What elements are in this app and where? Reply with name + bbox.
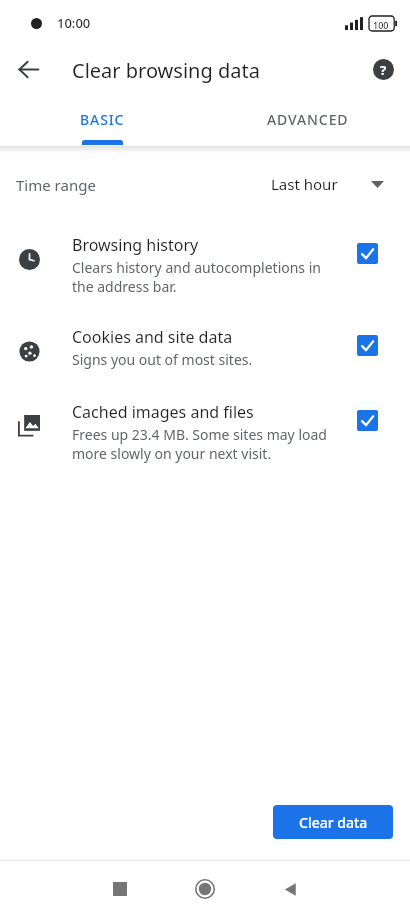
button[interactable]: Clear data	[273, 805, 393, 839]
staticText: Last hour	[271, 174, 338, 194]
staticText: Browsing history	[72, 234, 199, 256]
staticText: ?	[380, 61, 387, 79]
staticText: Cached images and files	[72, 401, 254, 423]
staticText: Frees up 23.4 MB. Some sites may load mo…	[72, 425, 327, 463]
staticText: Clear browsing data	[72, 57, 260, 84]
staticText: ADVANCED	[267, 110, 349, 129]
button[interactable]: Home	[183, 867, 227, 911]
button[interactable]: ADVANCED	[205, 98, 410, 146]
button[interactable]: Browsing history	[0, 232, 410, 304]
button[interactable]: Back	[268, 867, 312, 911]
button[interactable]: Back	[5, 46, 51, 92]
button[interactable]: Help	[360, 46, 406, 92]
button[interactable]: Checkbox	[346, 399, 388, 441]
button[interactable]: Recent apps	[98, 867, 142, 911]
button[interactable]: Cookies and site data	[0, 324, 410, 396]
staticText: BASIC	[80, 110, 125, 129]
staticText: Signs you out of most sites.	[72, 350, 253, 369]
staticText: 100	[373, 19, 389, 31]
staticText: Time range	[16, 175, 96, 195]
staticText: 10:00	[57, 14, 91, 32]
button[interactable]: Checkbox	[346, 324, 388, 366]
staticText: Clears history and autocompletions in th…	[72, 258, 321, 296]
staticText: Cookies and site data	[72, 326, 233, 348]
staticText: Clear data	[299, 813, 368, 832]
button[interactable]: Cached images and files	[0, 399, 410, 471]
button[interactable]: BASIC	[0, 98, 205, 146]
button[interactable]: Time range	[0, 160, 410, 210]
button[interactable]: Checkbox	[346, 232, 388, 274]
